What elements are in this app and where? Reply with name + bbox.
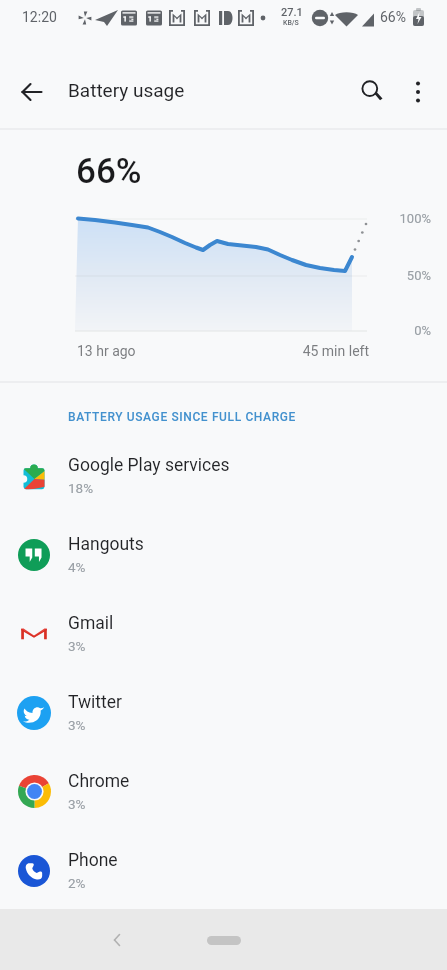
staticText: 27.1 <box>281 6 303 19</box>
staticText: 0% <box>380 323 431 338</box>
staticText: Phone <box>68 850 118 871</box>
button[interactable]: Back <box>12 72 52 112</box>
staticText: KB/S <box>283 19 299 27</box>
staticText: 3% <box>68 796 86 812</box>
button[interactable]: More options <box>398 72 438 112</box>
staticText: 3% <box>68 717 86 733</box>
button[interactable]: Gmail <box>0 594 447 673</box>
staticText: 4% <box>68 559 86 575</box>
button[interactable]: Chrome <box>0 752 447 831</box>
staticText: Hangouts <box>68 534 144 555</box>
staticText: Twitter <box>68 692 123 713</box>
staticText: 3% <box>68 638 86 654</box>
staticText: Gmail <box>68 613 114 634</box>
staticText: 2% <box>68 875 86 891</box>
staticText: 13 hr ago <box>77 343 136 359</box>
staticText: 66% <box>380 9 406 25</box>
staticText: Google Play services <box>68 455 230 476</box>
staticText: Chrome <box>68 771 130 792</box>
staticText: 100% <box>380 211 431 226</box>
staticText: 12:20 <box>22 9 57 25</box>
button[interactable]: BATTERY USAGE SINCE FULL CHARGE <box>0 386 447 447</box>
button[interactable]: Phone <box>0 831 447 910</box>
button[interactable]: Twitter <box>0 673 447 752</box>
staticText: 45 min left <box>250 343 369 359</box>
button[interactable]: Home <box>207 936 241 945</box>
button[interactable]: Hangouts <box>0 515 447 594</box>
staticText: 66% <box>76 151 142 192</box>
staticText: 18% <box>68 480 94 496</box>
staticText: Battery usage <box>68 79 185 101</box>
button[interactable]: Google Play services <box>0 436 447 515</box>
button[interactable]: Back <box>103 926 131 954</box>
button[interactable]: Search <box>353 72 393 112</box>
staticText: BATTERY USAGE SINCE FULL CHARGE <box>68 410 297 424</box>
staticText: 50% <box>380 268 431 283</box>
